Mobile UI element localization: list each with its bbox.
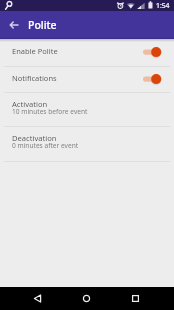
button[interactable]: Back [14,287,62,310]
staticText: 10 minutes before event [12,107,88,116]
staticText: 0 minutes after event [12,141,79,150]
staticText: Notifications [12,73,57,83]
staticText: Polite [28,18,57,32]
button[interactable]: Deactivation [0,127,174,161]
staticText: Activation [12,99,48,109]
button[interactable]: Recent apps [111,287,160,310]
button[interactable]: Enable Polite [0,39,174,66]
button[interactable]: Navigate up [0,11,25,39]
staticText: Deactivation [12,133,57,143]
staticText: 1:54 [156,1,170,10]
button[interactable]: Home [62,287,111,310]
staticText: Enable Polite [12,46,58,56]
button[interactable]: Notifications [0,67,174,92]
button[interactable]: Activation [0,93,174,126]
